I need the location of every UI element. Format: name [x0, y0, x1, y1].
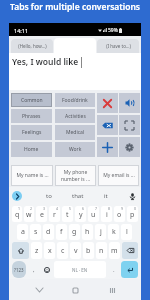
button[interactable]: d	[43, 224, 54, 240]
button[interactable]: 4	[49, 206, 60, 222]
button[interactable]: Settings	[119, 137, 140, 157]
button[interactable]: n	[96, 242, 107, 259]
button[interactable]: 8	[101, 206, 112, 222]
button[interactable]: b	[83, 242, 94, 259]
button[interactable]: Home	[68, 283, 82, 297]
staticText: m	[111, 246, 118, 256]
staticText: b	[86, 246, 91, 256]
button[interactable]: Add	[97, 137, 118, 157]
button[interactable]: z	[31, 242, 42, 259]
staticText: My email is ...	[103, 172, 135, 179]
button[interactable]: My phone number is ...	[56, 165, 95, 186]
staticText: 3	[43, 206, 46, 211]
staticText: Tabs for multiple conversations	[10, 1, 141, 13]
staticText: Yes, I would like	[12, 56, 79, 68]
button[interactable]: Enter	[121, 261, 138, 278]
button[interactable]: Common	[11, 93, 52, 107]
button[interactable]: 5	[62, 206, 73, 222]
button[interactable]: ,	[28, 261, 39, 278]
button[interactable]: (Hello, how...)	[11, 39, 53, 53]
staticText: 14:11	[14, 27, 29, 34]
staticText: e	[40, 210, 44, 220]
button[interactable]: Home	[11, 142, 52, 157]
button[interactable]: j	[95, 224, 106, 240]
button[interactable]: f	[56, 224, 67, 240]
button[interactable]: l	[121, 224, 132, 240]
staticText: (I have to...)	[106, 43, 131, 49]
button[interactable]: k	[108, 224, 119, 240]
button[interactable]: 6	[75, 206, 86, 222]
staticText: 1	[18, 206, 21, 211]
button[interactable]: m	[109, 242, 120, 259]
button[interactable]: ?123	[12, 261, 26, 278]
staticText: c	[61, 246, 65, 256]
button[interactable]: c	[57, 242, 68, 259]
button[interactable]: 0	[127, 206, 138, 222]
button[interactable]: Shift	[12, 242, 29, 259]
button[interactable]: Voice input	[128, 192, 137, 201]
button[interactable]: 3	[36, 206, 47, 222]
staticText: w	[26, 210, 32, 220]
staticText: 9	[121, 206, 124, 211]
staticText: t	[66, 210, 69, 220]
staticText: x	[48, 246, 52, 256]
button[interactable]: Medical	[55, 125, 95, 140]
button[interactable]: My email is ...	[99, 165, 138, 186]
staticText: .	[113, 266, 115, 274]
button[interactable]: 2	[24, 206, 34, 222]
staticText: NL · EN	[72, 267, 88, 273]
button[interactable]: More	[12, 191, 22, 201]
staticText: Medical	[66, 129, 85, 136]
button[interactable]: Backspace	[122, 242, 138, 259]
button[interactable]: g	[69, 224, 80, 240]
staticText: My name is ...	[16, 172, 49, 179]
staticText: d	[46, 227, 51, 237]
button[interactable]: Speak	[119, 93, 140, 113]
staticText: 5	[69, 206, 72, 211]
staticText: f	[60, 227, 63, 237]
button[interactable]: Emoji	[41, 261, 52, 278]
button[interactable]: 7	[88, 206, 99, 222]
staticText: 7	[95, 206, 98, 211]
button[interactable]: Food/drink	[55, 93, 95, 107]
button[interactable]: h	[82, 224, 93, 240]
button[interactable]: s	[30, 224, 41, 240]
button[interactable]: 1	[12, 206, 22, 222]
button[interactable]: (I have to...)	[97, 39, 139, 53]
staticText: k	[112, 227, 116, 237]
staticText: Activities	[65, 113, 86, 120]
staticText: (Hello, how...)	[18, 43, 47, 49]
staticText: s	[34, 227, 38, 237]
staticText: z	[35, 246, 39, 256]
button[interactable]: 9	[114, 206, 125, 222]
staticText: y	[79, 210, 83, 220]
button[interactable]: a	[17, 224, 28, 240]
button[interactable]: x	[44, 242, 55, 259]
button[interactable]: Feelings	[11, 125, 52, 140]
button[interactable]: .	[108, 261, 119, 278]
button[interactable]: My name is ...	[12, 165, 52, 186]
button[interactable]: Back	[32, 283, 46, 297]
button[interactable]: Work	[55, 142, 95, 157]
button[interactable]: Phrases	[11, 109, 52, 123]
staticText: Home	[24, 146, 39, 153]
button[interactable]: Fullscreen	[119, 115, 140, 135]
button[interactable]: Recent apps	[105, 283, 119, 297]
staticText: Phrases	[22, 113, 41, 120]
button[interactable]: Activities	[55, 109, 95, 123]
staticText: p	[130, 210, 135, 220]
button[interactable]: NL · EN	[54, 261, 106, 278]
staticText: it	[104, 192, 108, 200]
staticText: r	[53, 210, 56, 220]
staticText: 0	[134, 206, 137, 211]
button[interactable]: Backspace	[97, 115, 118, 135]
staticText: to	[46, 192, 52, 200]
staticText: Common	[21, 97, 43, 104]
staticText: Work	[69, 146, 82, 153]
staticText: ,	[33, 266, 35, 274]
button[interactable]: Clear	[97, 93, 118, 113]
staticText: l	[126, 227, 128, 237]
button[interactable]: v	[70, 242, 81, 259]
staticText: 59%	[108, 27, 118, 34]
